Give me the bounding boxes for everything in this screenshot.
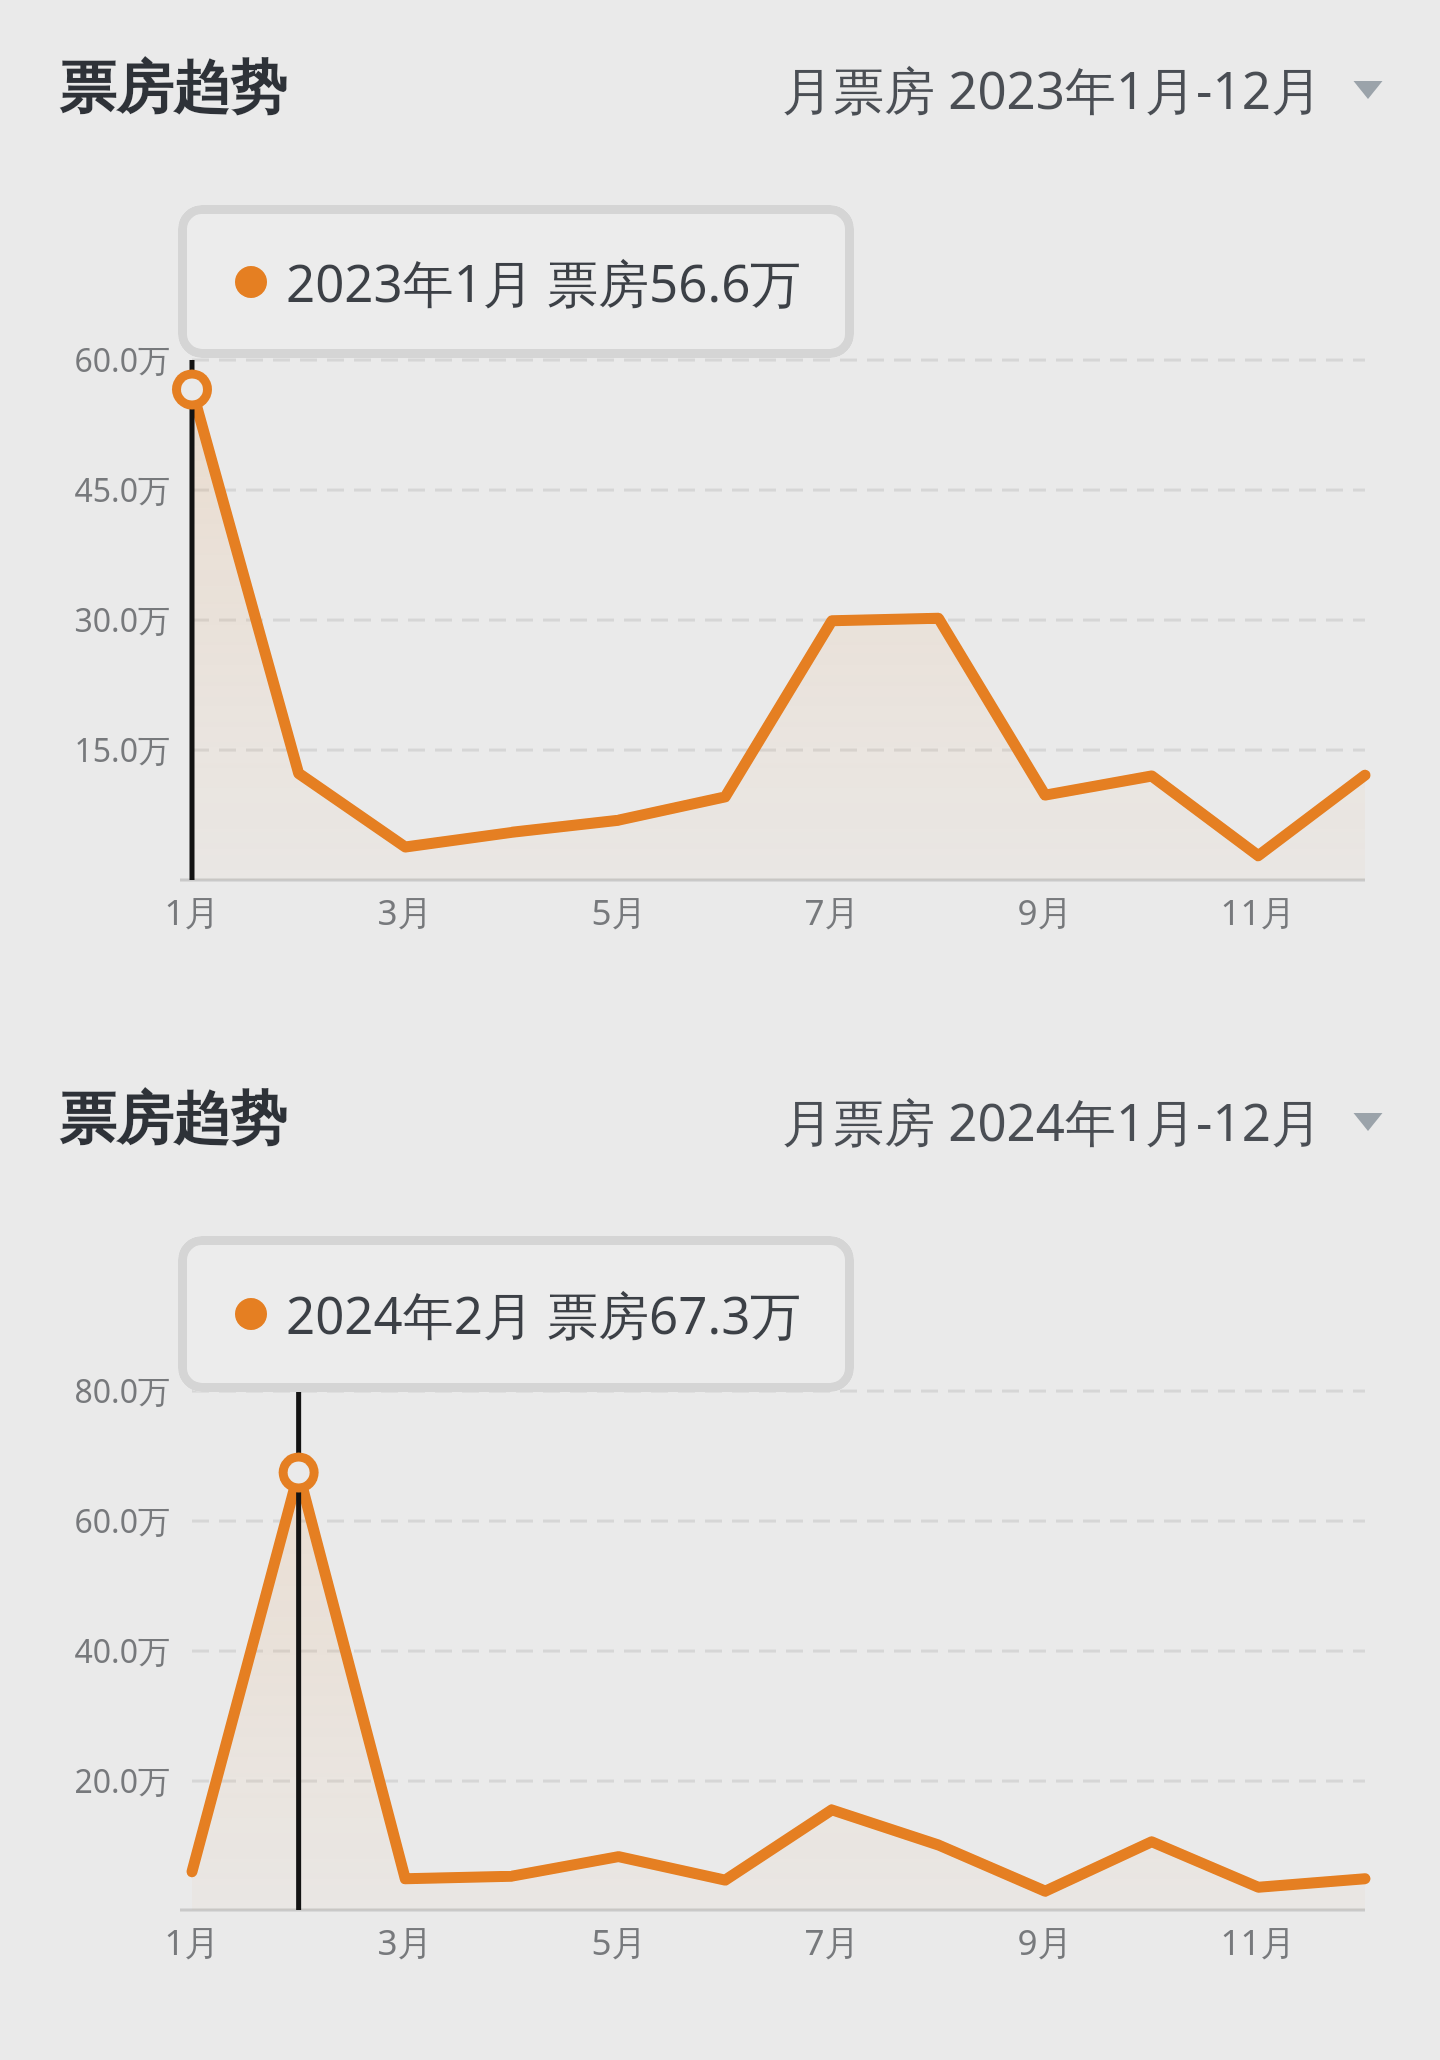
button[interactable]: 2024年2月 票房67.3万 [178, 1236, 854, 1392]
staticText: 11月 [1220, 1918, 1296, 1966]
staticText: 5月 [591, 1918, 647, 1966]
staticText: 月票房 2024年1月-12月 [782, 1086, 1322, 1156]
staticText: 票房趋势 [59, 1083, 287, 1155]
staticText: 3月 [377, 888, 433, 936]
staticText: 60.0万 [74, 1499, 170, 1543]
staticText: 2023年1月 票房56.6万 [286, 247, 802, 317]
staticText: 40.0万 [74, 1629, 170, 1673]
staticText: 9月 [1017, 888, 1073, 936]
staticText: 5月 [591, 888, 647, 936]
staticText: 7月 [804, 888, 860, 936]
staticText: 2024年2月 票房67.3万 [286, 1279, 802, 1349]
staticText: 15.0万 [74, 728, 170, 772]
other: 选择统计区间 [1346, 61, 1390, 117]
staticText: 7月 [804, 1918, 860, 1966]
staticText: 11月 [1220, 888, 1296, 936]
button[interactable]: 月票房 2024年1月-12月 [782, 1080, 1390, 1162]
button[interactable]: 2023年1月 票房56.6万 [178, 205, 854, 358]
staticText: 80.0万 [74, 1369, 170, 1413]
button[interactable]: 月票房 2023年1月-12月 [782, 48, 1390, 130]
staticText: 票房趋势 [59, 52, 287, 124]
staticText: 60.0万 [74, 338, 170, 382]
other: 选择统计区间 [1346, 1093, 1390, 1149]
staticText: 3月 [377, 1918, 433, 1966]
staticText: 1月 [164, 1918, 220, 1966]
staticText: 45.0万 [74, 468, 170, 512]
staticText: 月票房 2023年1月-12月 [782, 54, 1322, 124]
staticText: 1月 [164, 888, 220, 936]
staticText: 30.0万 [74, 598, 170, 642]
button[interactable]: 票房趋势 [57, 1077, 289, 1161]
staticText: 20.0万 [74, 1759, 170, 1803]
staticText: 9月 [1017, 1918, 1073, 1966]
button[interactable]: 票房趋势 [57, 46, 289, 130]
